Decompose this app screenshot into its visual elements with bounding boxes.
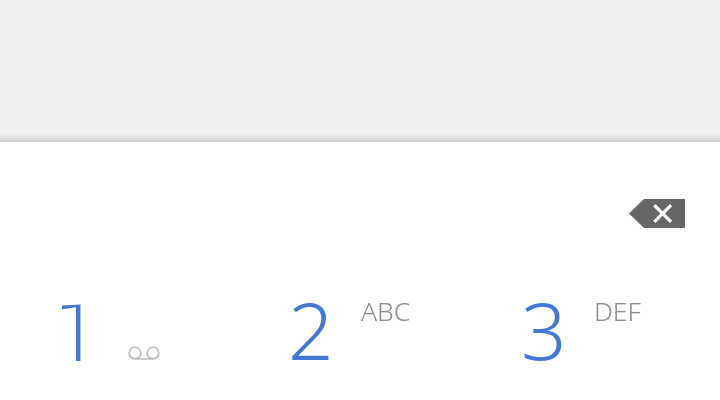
button[interactable]: Backspace	[610, 176, 704, 250]
button[interactable]: 2	[252, 264, 485, 388]
button[interactable]	[18, 264, 252, 388]
staticText: ABC	[361, 293, 411, 329]
staticText: 3	[521, 274, 567, 383]
staticText: DEF	[594, 293, 641, 329]
staticText: 2	[288, 274, 334, 383]
button[interactable]: 3	[485, 264, 718, 388]
